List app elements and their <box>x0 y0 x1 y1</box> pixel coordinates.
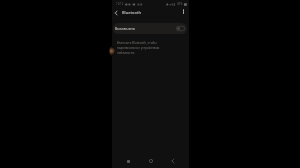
button[interactable]: Recent apps <box>121 154 135 168</box>
button[interactable]: Home <box>144 154 158 168</box>
staticText: 30% <box>177 2 183 6</box>
button[interactable]: More options <box>179 7 188 16</box>
staticText: 10:12 <box>116 2 124 6</box>
button[interactable]: Back <box>111 8 120 17</box>
staticText: Bluetooth <box>122 10 141 15</box>
button[interactable]: Выключено <box>113 23 187 34</box>
staticText: Включите Bluetooth, чтобы подключаться к… <box>117 41 163 55</box>
staticText: Выключено <box>115 26 135 31</box>
button[interactable]: Back <box>166 154 180 168</box>
